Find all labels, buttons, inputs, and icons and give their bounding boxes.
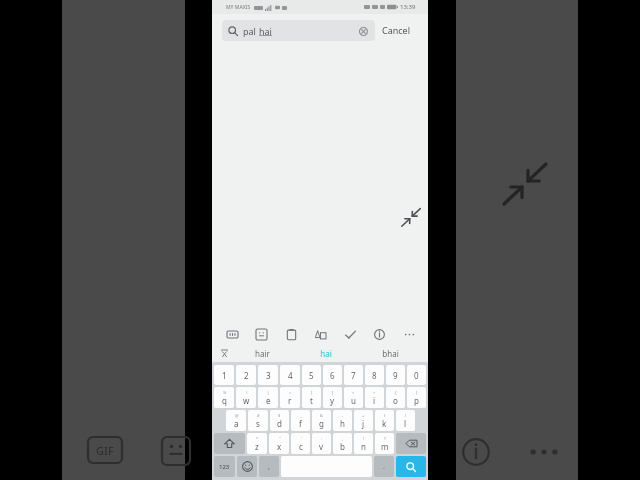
button[interactable]: ! bbox=[354, 433, 373, 454]
button[interactable]: bhai bbox=[358, 344, 422, 362]
staticText: c bbox=[299, 441, 303, 452]
staticText: 7 bbox=[351, 370, 356, 381]
button[interactable]: + bbox=[354, 410, 373, 431]
staticText: + bbox=[362, 413, 365, 418]
button[interactable]: Translate bbox=[310, 324, 330, 344]
button[interactable]: Clear bbox=[357, 25, 369, 37]
button[interactable]: @ bbox=[226, 410, 246, 431]
button[interactable]: ) bbox=[396, 410, 415, 431]
button[interactable]: 6 bbox=[323, 365, 342, 385]
staticText: ! bbox=[363, 436, 365, 441]
button[interactable]: 0 bbox=[407, 365, 426, 385]
staticText: & bbox=[320, 413, 323, 418]
staticText: 13:39 bbox=[400, 3, 416, 11]
button[interactable]: More bbox=[399, 324, 419, 344]
button[interactable]: ( bbox=[375, 410, 394, 431]
button[interactable]: 5 bbox=[302, 365, 321, 385]
staticText: 9 bbox=[393, 370, 398, 381]
button[interactable]: * bbox=[247, 433, 267, 454]
button[interactable]: 7 bbox=[344, 365, 363, 385]
staticText: b bbox=[340, 441, 345, 452]
staticText: q bbox=[222, 395, 227, 406]
button[interactable]: } bbox=[407, 387, 426, 408]
button[interactable]: { bbox=[386, 387, 405, 408]
button[interactable]: \ bbox=[236, 387, 256, 408]
staticText: z bbox=[255, 441, 259, 452]
staticText: hair bbox=[255, 348, 270, 359]
staticText: ? bbox=[384, 436, 386, 441]
staticText: pal bbox=[243, 25, 259, 37]
button[interactable]: 4 bbox=[280, 365, 300, 385]
button[interactable]: Check bbox=[340, 324, 360, 344]
button[interactable]: _ bbox=[291, 410, 310, 431]
button[interactable]: Shift bbox=[214, 433, 245, 454]
staticText: f bbox=[299, 418, 302, 429]
staticText: = bbox=[289, 390, 292, 395]
staticText: { bbox=[395, 390, 397, 395]
staticText: 1 bbox=[222, 370, 227, 381]
staticText: ( bbox=[384, 413, 386, 418]
staticText: 8 bbox=[372, 370, 377, 381]
staticText: 3 bbox=[266, 370, 271, 381]
button[interactable]: [ bbox=[302, 387, 321, 408]
staticText: 5 bbox=[309, 370, 314, 381]
staticText: 0 bbox=[414, 370, 419, 381]
button[interactable]: , bbox=[259, 456, 279, 477]
button[interactable]: GIF bbox=[222, 324, 242, 344]
button[interactable]: 3 bbox=[258, 365, 278, 385]
button[interactable]: $ bbox=[270, 410, 289, 431]
staticText: " bbox=[279, 436, 281, 441]
button[interactable]: Expand suggestions bbox=[217, 346, 231, 360]
button[interactable]: ; bbox=[333, 433, 352, 454]
button[interactable]: 1 bbox=[214, 365, 234, 385]
button[interactable]: " bbox=[269, 433, 289, 454]
button[interactable]: ] bbox=[323, 387, 342, 408]
staticText: ; bbox=[342, 436, 344, 441]
staticText: % bbox=[223, 390, 227, 395]
button[interactable]: % bbox=[214, 387, 234, 408]
button[interactable]: > bbox=[365, 387, 384, 408]
staticText: y bbox=[330, 395, 335, 406]
button[interactable]: ' bbox=[291, 433, 310, 454]
staticText: 4 bbox=[288, 370, 293, 381]
button[interactable]: Backspace bbox=[396, 433, 426, 454]
staticText: , bbox=[268, 462, 270, 472]
staticText: } bbox=[416, 390, 418, 395]
button[interactable]: 123 bbox=[214, 456, 235, 477]
button[interactable]: Emoji bbox=[237, 456, 257, 477]
button[interactable]: hai bbox=[294, 344, 358, 362]
staticText: | bbox=[267, 390, 270, 395]
staticText: < bbox=[352, 390, 355, 395]
staticText: p bbox=[414, 395, 419, 406]
button[interactable]: - bbox=[333, 410, 352, 431]
staticText: m bbox=[381, 441, 389, 452]
button[interactable]: 9 bbox=[386, 365, 405, 385]
button[interactable]: Clipboard bbox=[281, 324, 301, 344]
staticText: v bbox=[319, 441, 324, 452]
button[interactable]: Search bbox=[396, 456, 426, 477]
button[interactable]: & bbox=[312, 410, 331, 431]
button[interactable]: Cancel bbox=[375, 20, 418, 40]
button[interactable]: | bbox=[258, 387, 278, 408]
button[interactable]: < bbox=[344, 387, 363, 408]
button[interactable]: ? bbox=[375, 433, 394, 454]
staticText: Cancel bbox=[382, 24, 411, 36]
button[interactable]: 8 bbox=[365, 365, 384, 385]
button[interactable]: : bbox=[312, 433, 331, 454]
staticText: g bbox=[319, 418, 324, 429]
button[interactable]: Info bbox=[369, 324, 389, 344]
button[interactable]: # bbox=[248, 410, 268, 431]
staticText: 2 bbox=[244, 370, 249, 381]
staticText: j bbox=[362, 418, 365, 429]
staticText: d bbox=[277, 418, 282, 429]
button[interactable]: = bbox=[280, 387, 300, 408]
staticText: o bbox=[393, 395, 398, 406]
staticText: $ bbox=[278, 413, 281, 418]
button[interactable]: 2 bbox=[236, 365, 256, 385]
button[interactable]: pal bbox=[222, 20, 375, 41]
staticText: w bbox=[243, 395, 250, 406]
button[interactable]: hair bbox=[230, 344, 294, 362]
button[interactable]: Stickers bbox=[251, 324, 271, 344]
